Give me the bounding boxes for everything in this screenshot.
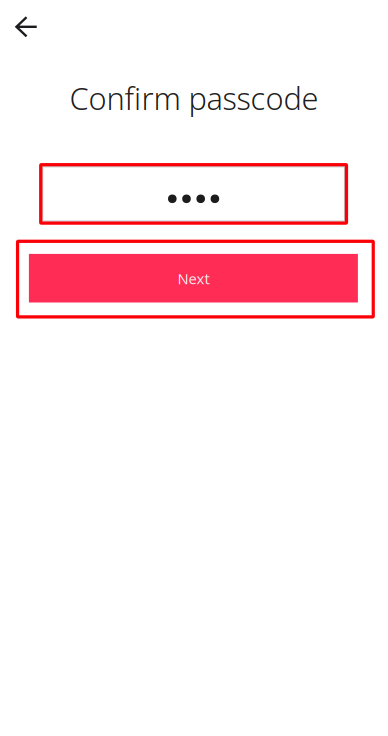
staticText: Next <box>177 269 209 288</box>
button[interactable]: Passcode <box>43 167 345 221</box>
staticText: Confirm passcode <box>69 78 318 118</box>
button[interactable]: Back <box>4 4 50 50</box>
button[interactable]: Next <box>29 254 358 302</box>
